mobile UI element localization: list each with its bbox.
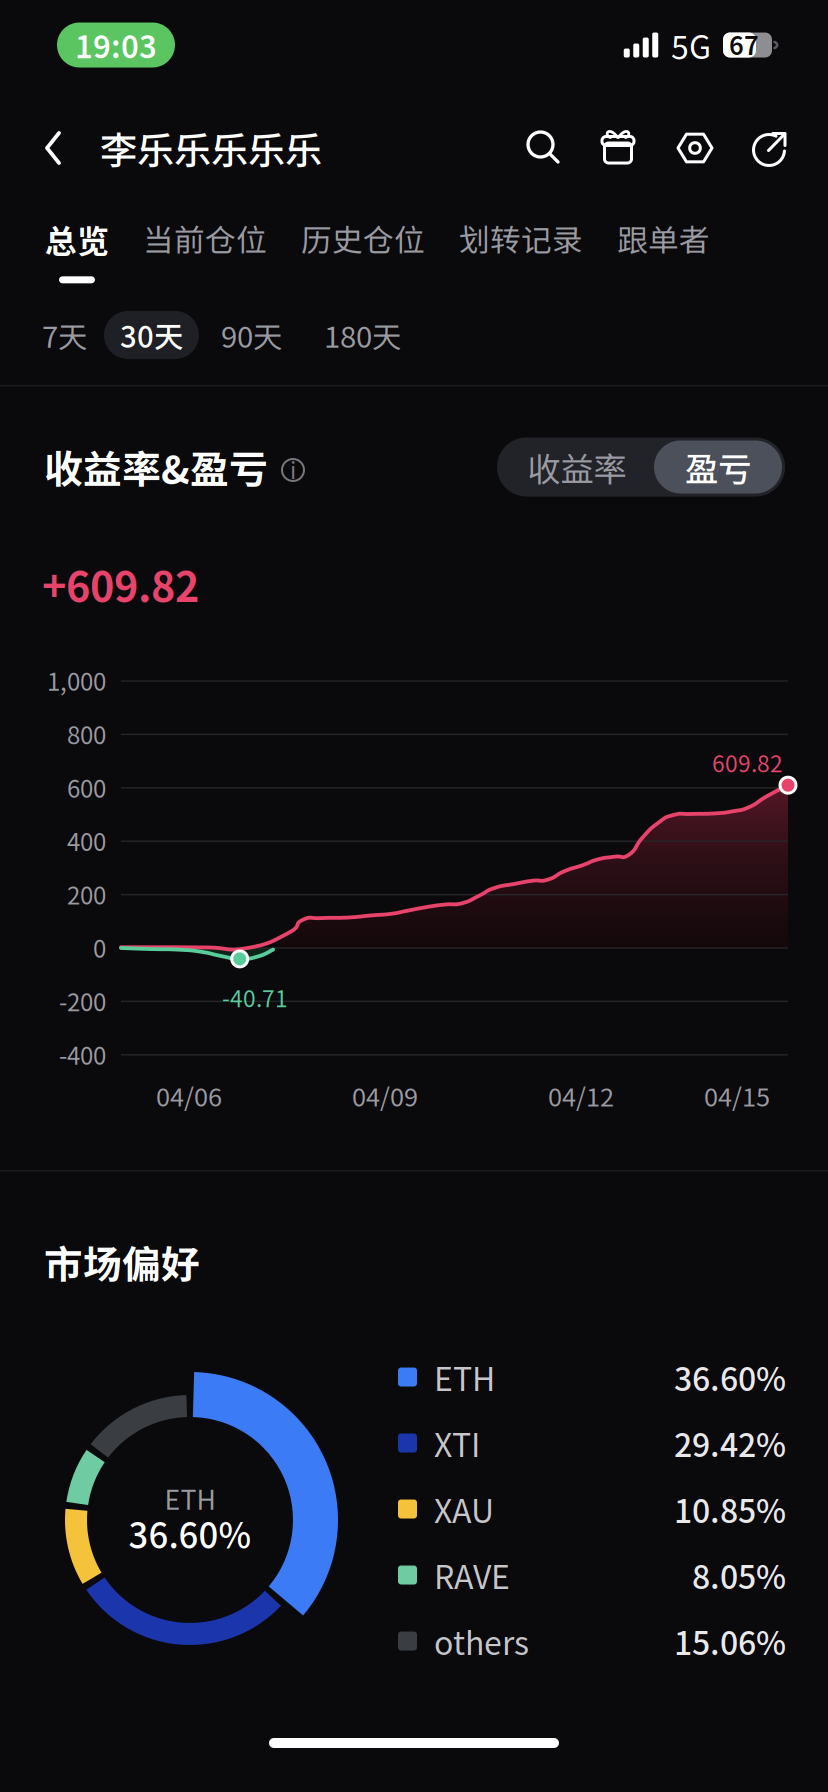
- staticText: 市场偏好: [44, 1234, 200, 1290]
- staticText: -400: [59, 1037, 106, 1072]
- staticText: 19:03: [75, 23, 157, 67]
- staticText: ETH: [434, 1354, 495, 1400]
- staticText: 5G: [671, 22, 711, 68]
- button[interactable]: 历史仓位: [301, 216, 425, 260]
- staticText: 盈亏: [685, 443, 751, 491]
- button[interactable]: 划转记录: [459, 216, 583, 260]
- staticText: 8.05%: [692, 1552, 786, 1598]
- button[interactable]: 7天: [25, 311, 104, 359]
- staticText: 收益率&盈亏: [44, 439, 268, 495]
- staticText: XAU: [434, 1486, 494, 1532]
- button[interactable]: 当前仓位: [143, 216, 267, 260]
- staticText: 1,000: [47, 663, 106, 698]
- staticText: 收益率: [527, 443, 626, 491]
- button[interactable]: Share: [744, 122, 796, 174]
- staticText: 36.60%: [674, 1354, 786, 1400]
- staticText: 180天: [324, 314, 401, 356]
- staticText: 30天: [120, 314, 183, 356]
- staticText: 36.60%: [128, 1508, 251, 1558]
- staticText: 04/12: [548, 1077, 614, 1114]
- staticText: 600: [67, 770, 106, 805]
- staticText: 划转记录: [459, 216, 583, 260]
- staticText: 总览: [45, 216, 109, 262]
- staticText: 04/15: [704, 1077, 770, 1114]
- button[interactable]: Rewards: [592, 122, 644, 174]
- button[interactable]: 跟单者: [617, 216, 710, 260]
- button[interactable]: 收益率: [500, 440, 654, 493]
- staticText: XTI: [434, 1420, 480, 1466]
- staticText: ETH: [164, 1479, 215, 1517]
- staticText: 67: [729, 26, 759, 62]
- staticText: 10.85%: [674, 1486, 786, 1532]
- button[interactable]: 30天: [104, 311, 199, 359]
- staticText: -40.71: [222, 981, 288, 1014]
- button[interactable]: 总览: [45, 216, 109, 269]
- button[interactable]: 180天: [304, 311, 421, 359]
- staticText: 29.42%: [674, 1420, 786, 1466]
- staticText: 04/06: [156, 1077, 222, 1114]
- button[interactable]: Back: [31, 122, 75, 174]
- staticText: -200: [59, 983, 106, 1018]
- staticText: i: [290, 453, 296, 485]
- staticText: 800: [67, 716, 106, 751]
- staticText: 历史仓位: [301, 216, 425, 260]
- staticText: 0: [93, 930, 106, 965]
- staticText: 200: [67, 877, 106, 911]
- button[interactable]: 90天: [199, 311, 304, 359]
- staticText: +609.82: [42, 554, 199, 614]
- staticText: 04/09: [352, 1077, 418, 1114]
- button[interactable]: Settings: [669, 122, 721, 174]
- button[interactable]: 盈亏: [654, 440, 782, 493]
- staticText: others: [434, 1618, 529, 1664]
- staticText: 15.06%: [674, 1618, 786, 1664]
- staticText: RAVE: [434, 1552, 510, 1598]
- staticText: 400: [67, 823, 106, 858]
- staticText: 当前仓位: [143, 216, 267, 260]
- staticText: 7天: [42, 314, 87, 356]
- staticText: 李乐乐乐乐乐: [100, 121, 322, 175]
- button[interactable]: Search: [517, 122, 569, 174]
- staticText: 90天: [221, 314, 282, 356]
- staticText: 跟单者: [617, 216, 710, 260]
- staticText: 609.82: [712, 746, 783, 779]
